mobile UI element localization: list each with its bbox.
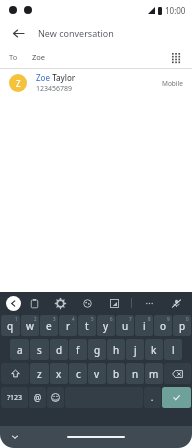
staticText: v	[94, 367, 100, 381]
button[interactable]: c	[69, 363, 87, 384]
button[interactable]: k	[145, 339, 163, 360]
staticText: m	[149, 367, 159, 381]
staticText: u	[122, 319, 129, 333]
button[interactable]: w	[21, 315, 39, 336]
staticText: Mobile	[162, 79, 183, 88]
staticText: p	[179, 319, 186, 333]
staticText: y	[103, 319, 109, 333]
button[interactable]: h	[107, 339, 125, 360]
staticText: n	[132, 367, 139, 381]
staticText: s	[37, 343, 42, 357]
staticText: 5	[91, 316, 94, 322]
staticText: b	[113, 367, 120, 381]
button[interactable]: u	[116, 315, 134, 336]
staticText: Z	[16, 78, 21, 89]
button[interactable]: Shift	[1, 363, 29, 384]
staticText: 2	[34, 316, 37, 322]
staticText: k	[151, 343, 157, 357]
staticText: l	[172, 343, 175, 357]
button[interactable]: Emoji	[47, 387, 64, 408]
button[interactable]: GIF	[106, 295, 122, 311]
button[interactable]: Voice input off	[168, 295, 184, 311]
button[interactable]: f	[69, 339, 87, 360]
staticText: o	[160, 319, 167, 333]
staticText: 123456789	[36, 84, 73, 94]
button[interactable]: a	[10, 339, 29, 360]
button[interactable]: n	[126, 363, 144, 384]
staticText: q	[7, 319, 14, 333]
staticText: .	[151, 392, 154, 403]
button[interactable]: Z	[0, 69, 192, 97]
button[interactable]: .	[144, 387, 161, 408]
button[interactable]: m	[145, 363, 163, 384]
button[interactable]: o	[154, 315, 172, 336]
staticText: i	[143, 319, 146, 333]
button[interactable]: Backspace	[164, 363, 191, 384]
button[interactable]: ?123	[1, 387, 28, 408]
button[interactable]: Back	[8, 23, 28, 43]
staticText: Zoe	[32, 52, 46, 62]
button[interactable]: Hide keyboard	[8, 430, 22, 444]
button[interactable]: r	[59, 315, 77, 336]
button[interactable]: d	[50, 339, 68, 360]
button[interactable]: g	[88, 339, 106, 360]
staticText: 8	[148, 316, 151, 322]
staticText: To	[9, 52, 18, 62]
button[interactable]: z	[30, 363, 49, 384]
staticText: d	[56, 343, 63, 357]
staticText: f	[76, 343, 80, 357]
button[interactable]: Settings	[52, 295, 68, 311]
button[interactable]: More options	[141, 295, 157, 311]
button[interactable]: Back	[6, 296, 21, 311]
staticText: 0	[186, 316, 189, 322]
staticText: g	[94, 343, 101, 357]
staticText: New conversation	[38, 27, 114, 39]
button[interactable]: i	[135, 315, 153, 336]
staticText: a	[17, 343, 23, 357]
staticText: @	[34, 392, 42, 403]
staticText: e	[46, 319, 52, 333]
staticText: Zoe Taylor	[36, 72, 76, 83]
staticText: 7	[129, 316, 132, 322]
staticText: j	[134, 343, 137, 357]
button[interactable]: Clipboard	[26, 295, 42, 311]
button[interactable]: p	[173, 315, 191, 336]
button[interactable]: Dialpad	[168, 49, 184, 65]
staticText: ?123	[7, 393, 23, 403]
button[interactable]: y	[97, 315, 115, 336]
button[interactable]: x	[50, 363, 68, 384]
staticText: t	[85, 319, 89, 333]
staticText: 9	[167, 316, 170, 322]
staticText: h	[113, 343, 120, 357]
button[interactable]: t	[78, 315, 96, 336]
button[interactable]: b	[107, 363, 125, 384]
button[interactable]: l	[164, 339, 182, 360]
button[interactable]: s	[30, 339, 49, 360]
staticText: 4	[72, 316, 75, 322]
staticText: 1	[15, 316, 18, 322]
button[interactable]: Enter	[162, 387, 191, 408]
button[interactable]: @	[29, 387, 46, 408]
staticText: 3	[53, 316, 56, 322]
button[interactable]: j	[126, 339, 144, 360]
button[interactable]: e	[40, 315, 58, 336]
staticText: c	[76, 367, 81, 381]
button[interactable]: Stickers	[79, 295, 95, 311]
staticText: 6	[110, 316, 113, 322]
staticText: z	[37, 367, 42, 381]
staticText: 10:00	[165, 5, 186, 16]
staticText: x	[56, 367, 62, 381]
button[interactable]: q	[1, 315, 20, 336]
button[interactable]: v	[88, 363, 106, 384]
staticText: w	[26, 319, 34, 333]
staticText: r	[66, 319, 71, 333]
